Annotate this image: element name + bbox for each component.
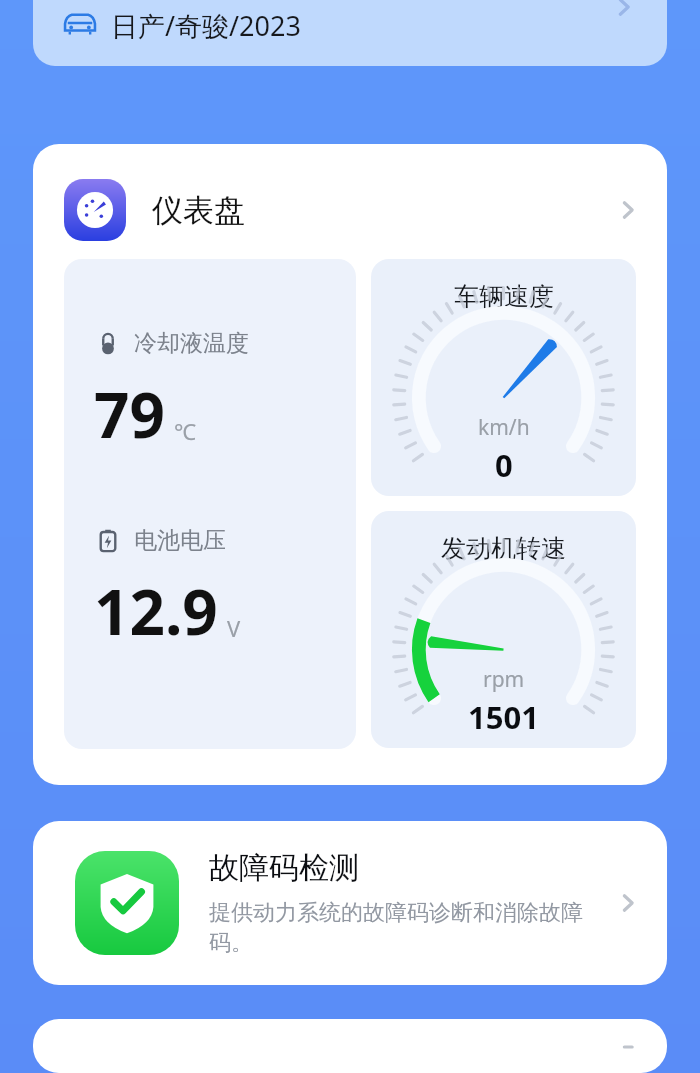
other: Open vehicle details: [611, 0, 637, 20]
button[interactable]: 仪表盘: [33, 144, 667, 251]
button[interactable]: 车辆速度: [371, 259, 636, 496]
button[interactable]: 日产/奇骏/2023: [33, 0, 667, 66]
staticText: 79: [94, 372, 165, 456]
staticText: V: [227, 613, 241, 643]
button[interactable]: 冷却液温度: [64, 259, 356, 749]
staticText: 仪表盘: [152, 191, 245, 230]
staticText: 提供动力系统的故障码诊断和消除故障码。: [209, 899, 605, 957]
staticText: 车辆速度: [454, 281, 554, 312]
staticText: 发动机转速: [441, 533, 566, 564]
staticText: 0: [495, 444, 513, 486]
staticText: km/h: [478, 413, 530, 442]
staticText: 故障码检测: [209, 849, 359, 887]
staticText: 日产/奇骏/2023: [111, 7, 301, 44]
staticText: rpm: [483, 665, 525, 694]
staticText: 电池电压: [134, 526, 226, 555]
button[interactable]: 发动机转速: [371, 511, 636, 748]
staticText: 12.9: [94, 569, 218, 653]
staticText: 1501: [468, 696, 539, 738]
button[interactable]: 故障码检测: [33, 821, 667, 985]
button[interactable]: 统一诊断服务: [33, 1019, 667, 1073]
staticText: ℃: [174, 416, 196, 446]
staticText: 冷却液温度: [134, 329, 249, 358]
